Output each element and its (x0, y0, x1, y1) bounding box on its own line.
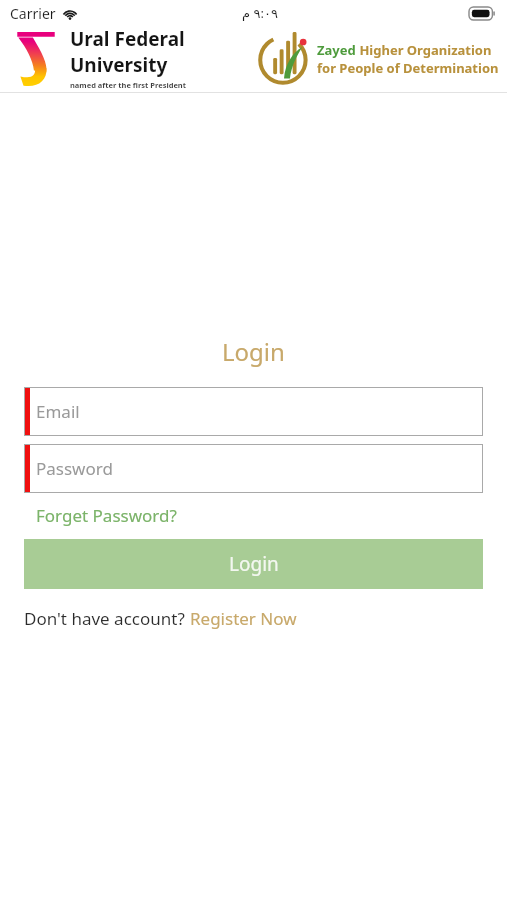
button[interactable]: Password (24, 444, 483, 493)
staticText: Don't have account? (24, 607, 190, 630)
staticText: Email (36, 400, 80, 423)
staticText: Login (222, 335, 285, 368)
button[interactable]: Email (24, 387, 483, 436)
button[interactable]: Register Now (190, 607, 297, 630)
staticText: Register Now (190, 607, 297, 630)
staticText: for People of Determination (317, 59, 499, 77)
staticText: named after the first President (70, 80, 186, 90)
staticText: Carrier (10, 4, 56, 23)
staticText: Password (36, 457, 113, 480)
button[interactable]: Login (24, 539, 483, 589)
staticText: Forget Password? (36, 504, 177, 527)
button[interactable]: Forget Password? (36, 502, 177, 529)
staticText: Login (229, 551, 279, 577)
staticText: Higher Organization (356, 41, 492, 59)
staticText: University (70, 52, 168, 78)
staticText: ٩:٠٩ م (242, 4, 278, 22)
staticText: Zayed (317, 41, 356, 59)
staticText: Ural Federal (70, 26, 185, 52)
